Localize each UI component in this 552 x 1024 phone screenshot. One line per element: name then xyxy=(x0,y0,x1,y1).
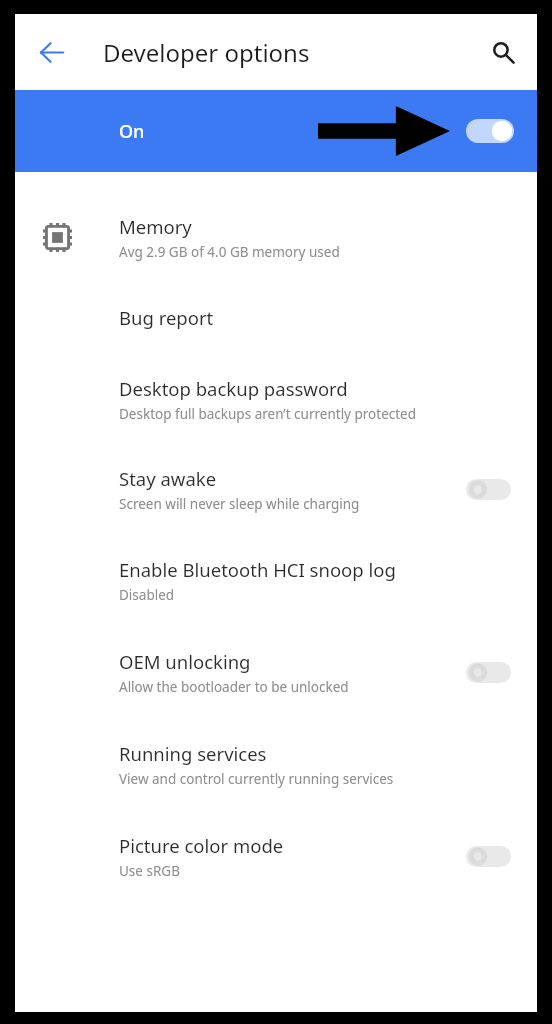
staticText: Enable Bluetooth HCI snoop log xyxy=(119,557,396,582)
staticText: OEM unlocking xyxy=(119,649,251,674)
staticText: Memory xyxy=(119,214,192,239)
staticText: Bug report xyxy=(119,305,214,330)
staticText: Avg 2.9 GB of 4.0 GB memory used xyxy=(119,243,340,261)
staticText: Developer options xyxy=(103,36,310,69)
button[interactable]: Running services xyxy=(15,718,537,810)
button[interactable]: Memory xyxy=(15,194,537,280)
staticText: On xyxy=(119,119,145,144)
staticText: Desktop full backups aren’t currently pr… xyxy=(119,405,417,423)
staticText: Desktop backup password xyxy=(119,376,348,401)
button[interactable]: Desktop backup password xyxy=(15,354,537,444)
staticText: Allow the bootloader to be unlocked xyxy=(119,678,349,696)
staticText: Screen will never sleep while charging xyxy=(119,495,360,513)
button[interactable]: Picture color mode xyxy=(15,810,537,902)
staticText: View and control currently running servi… xyxy=(119,770,394,788)
button[interactable]: Enable Bluetooth HCI snoop log xyxy=(15,534,537,626)
button[interactable]: OEM unlocking xyxy=(15,626,537,718)
staticText: Stay awake xyxy=(119,466,217,491)
staticText: Picture color mode xyxy=(119,833,284,858)
button[interactable]: On xyxy=(15,90,537,172)
button[interactable]: Back xyxy=(28,29,74,75)
button[interactable]: Bug report xyxy=(15,280,537,354)
staticText: Running services xyxy=(119,741,267,766)
button[interactable]: Stay awake xyxy=(15,444,537,534)
button[interactable]: Search xyxy=(480,29,526,75)
staticText: Disabled xyxy=(119,586,175,604)
staticText: Use sRGB xyxy=(119,862,180,880)
